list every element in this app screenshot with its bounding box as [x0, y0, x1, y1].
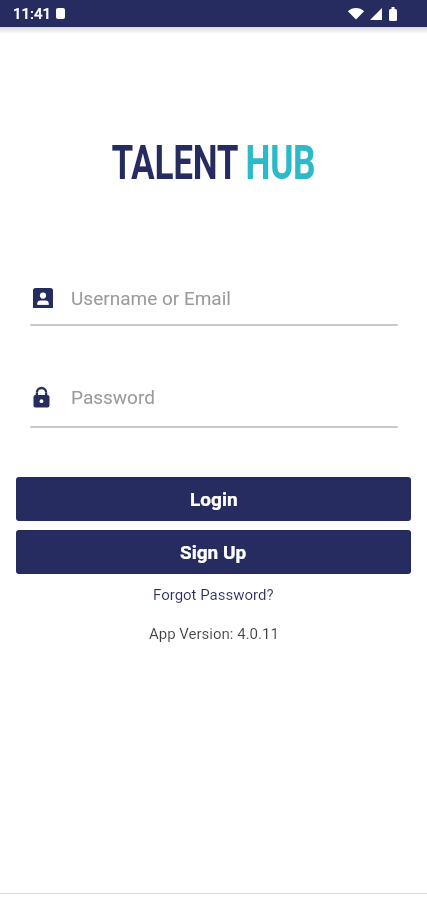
- staticText: App Version: 4.0.11: [149, 625, 279, 643]
- staticText: TALENT HUB: [112, 134, 315, 191]
- staticText: Username or Email: [71, 287, 231, 309]
- staticText: Sign Up: [180, 541, 247, 563]
- staticText: Forgot Password?: [153, 586, 274, 604]
- button[interactable]: Forgot Password?: [145, 584, 282, 606]
- staticText: Password: [71, 386, 155, 408]
- staticText: 11:41: [13, 5, 52, 23]
- button[interactable]: Password: [0, 380, 427, 414]
- button[interactable]: Sign Up: [16, 530, 411, 574]
- button[interactable]: Login: [16, 477, 411, 521]
- button[interactable]: Username or Email: [0, 281, 427, 315]
- staticText: Login: [190, 488, 238, 510]
